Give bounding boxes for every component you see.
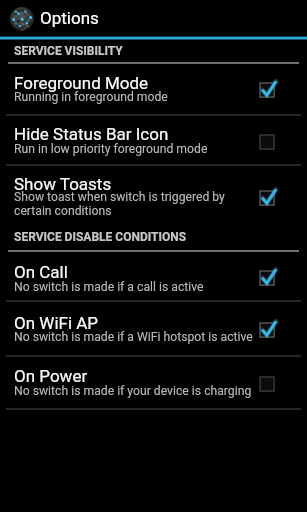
staticText: Foreground Mode — [14, 73, 149, 93]
staticText: On Call — [14, 262, 68, 282]
button[interactable] — [0, 165, 307, 221]
button[interactable] — [0, 252, 307, 300]
staticText: SERVICE DISABLE CONDITIONS — [14, 230, 187, 244]
staticText: Run in low priority foreground mode — [14, 142, 208, 156]
button[interactable] — [0, 357, 307, 407]
staticText: certain conditions — [14, 204, 112, 218]
staticText: On Power — [14, 366, 88, 386]
staticText: Options — [40, 8, 99, 28]
button[interactable] — [0, 301, 307, 355]
staticText: Show toast when switch is triggered by — [14, 190, 225, 204]
staticText: Running in foreground mode — [14, 90, 168, 104]
button[interactable] — [0, 64, 307, 114]
staticText: On WiFi AP — [14, 313, 99, 333]
staticText: No switch is made if your device is char… — [14, 384, 252, 398]
button[interactable] — [0, 116, 307, 163]
button[interactable] — [0, 0, 307, 37]
staticText: No switch is made if a call is active — [14, 280, 204, 294]
staticText: Hide Status Bar Icon — [14, 124, 169, 144]
staticText: No switch is made if a WiFi hotspot is a… — [14, 330, 253, 344]
staticText: Show Toasts — [14, 174, 112, 194]
staticText: SERVICE VISIBILITY — [14, 44, 123, 58]
